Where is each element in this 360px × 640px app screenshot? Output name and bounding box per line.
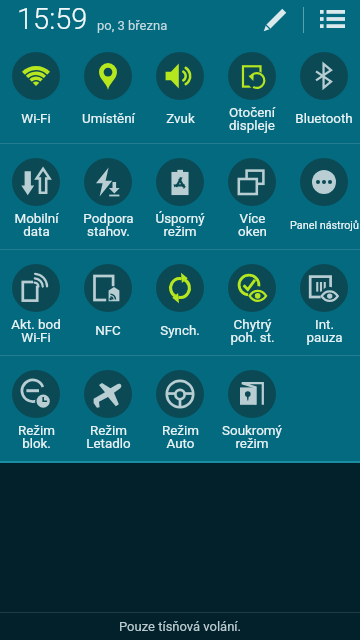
staticText: Více oken <box>238 211 267 240</box>
button[interactable]: Akt. bod Wi-Fi <box>0 249 72 355</box>
staticText: Pouze tísňová volání. <box>119 619 242 634</box>
button[interactable]: Edit quick settings <box>252 0 298 37</box>
button[interactable]: Soukromý režim <box>216 355 288 461</box>
staticText: Synch. <box>160 323 200 339</box>
button[interactable]: NFC <box>72 249 144 355</box>
button[interactable]: Úsporný režim <box>144 143 216 249</box>
staticText: 15:59 <box>17 2 88 36</box>
staticText: po, 3 března <box>97 18 168 33</box>
button[interactable]: Wi-Fi <box>0 37 72 143</box>
staticText: Zvuk <box>166 111 195 127</box>
staticText: Úsporný režim <box>155 211 205 240</box>
button[interactable]: Bluetooth <box>288 37 360 143</box>
button[interactable]: Režim Auto <box>144 355 216 461</box>
staticText: Akt. bod Wi-Fi <box>11 317 61 346</box>
staticText: Bluetooth <box>295 111 353 127</box>
button[interactable]: Int. pauza <box>288 249 360 355</box>
staticText: Režim blok. <box>18 423 55 452</box>
staticText: Chytrý poh. st. <box>230 317 275 346</box>
staticText: NFC <box>95 323 121 339</box>
staticText: Režim Auto <box>162 423 199 452</box>
staticText: Panel nástrojů <box>290 219 359 232</box>
button[interactable]: Více oken <box>216 143 288 249</box>
staticText: Int. pauza <box>306 317 343 346</box>
button[interactable]: Zvuk <box>144 37 216 143</box>
button[interactable]: Umístění <box>72 37 144 143</box>
button[interactable]: Panel nástrojů <box>288 143 360 249</box>
button[interactable]: Režim Letadlo <box>72 355 144 461</box>
staticText: Podpora stahov. <box>83 211 134 240</box>
staticText: Wi-Fi <box>21 111 51 127</box>
staticText: Otočení displeje <box>229 105 275 134</box>
button[interactable]: Režim blok. <box>0 355 72 461</box>
button[interactable]: Podpora stahov. <box>72 143 144 249</box>
staticText: Režim Letadlo <box>86 423 131 452</box>
button[interactable]: Mobilní data <box>0 143 72 249</box>
button[interactable]: Chytrý poh. st. <box>216 249 288 355</box>
button[interactable]: All settings <box>310 0 354 37</box>
button[interactable]: Synch. <box>144 249 216 355</box>
staticText: Mobilní data <box>14 211 59 240</box>
button[interactable]: Otočení displeje <box>216 37 288 143</box>
staticText: Umístění <box>82 111 135 127</box>
staticText: Soukromý režim <box>222 423 282 452</box>
